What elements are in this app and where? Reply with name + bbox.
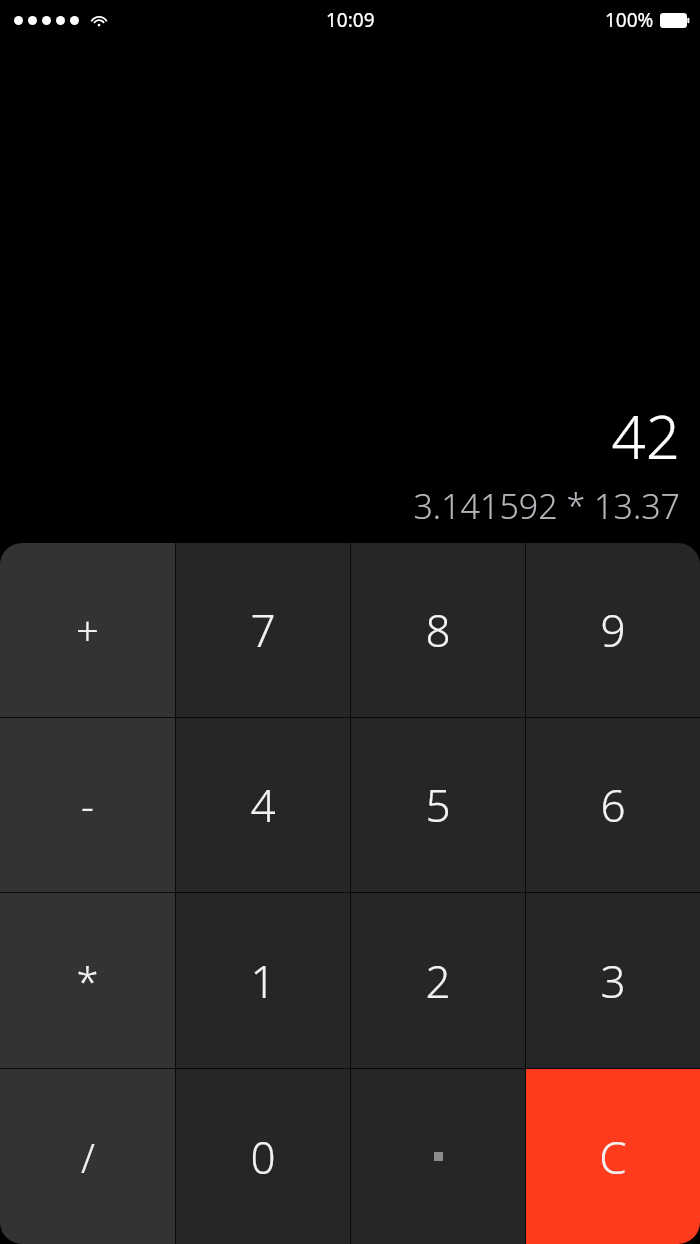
staticText: 3.141592 * 13.37 — [0, 483, 680, 529]
button[interactable]: 4 — [176, 718, 350, 892]
button[interactable]: 2 — [351, 893, 525, 1068]
button[interactable]: 1 — [176, 893, 350, 1068]
staticText: 5 — [425, 775, 451, 835]
staticText: 3 — [600, 951, 626, 1011]
staticText: 0 — [250, 1127, 276, 1187]
staticText: * — [76, 954, 99, 1008]
staticText: 6 — [600, 775, 626, 835]
button[interactable]: C — [526, 1069, 700, 1244]
staticText: 1 — [250, 951, 276, 1011]
staticText: 4 — [250, 775, 276, 835]
staticText: 7 — [250, 600, 276, 660]
staticText: 10:09 — [326, 7, 375, 33]
staticText: 2 — [425, 951, 451, 1011]
staticText: + — [76, 603, 99, 657]
staticText: C — [599, 1127, 627, 1187]
staticText: 8 — [425, 600, 451, 660]
button[interactable]: 7 — [176, 543, 350, 717]
staticText: - — [81, 778, 94, 832]
button[interactable]: * — [0, 893, 175, 1068]
button[interactable]: - — [0, 718, 175, 892]
button[interactable]: 3 — [526, 893, 700, 1068]
button[interactable]: 8 — [351, 543, 525, 717]
button[interactable]: + — [0, 543, 175, 717]
button[interactable]: 6 — [526, 718, 700, 892]
staticText: 9 — [600, 600, 626, 660]
button[interactable]: / — [0, 1069, 175, 1244]
button[interactable]: 5 — [351, 718, 525, 892]
staticText: 100% — [605, 7, 654, 33]
staticText: 42 — [0, 395, 680, 477]
button[interactable]: 9 — [526, 543, 700, 717]
staticText: / — [81, 1130, 95, 1184]
button[interactable]: Decimal point — [351, 1069, 525, 1244]
button[interactable]: 0 — [176, 1069, 350, 1244]
